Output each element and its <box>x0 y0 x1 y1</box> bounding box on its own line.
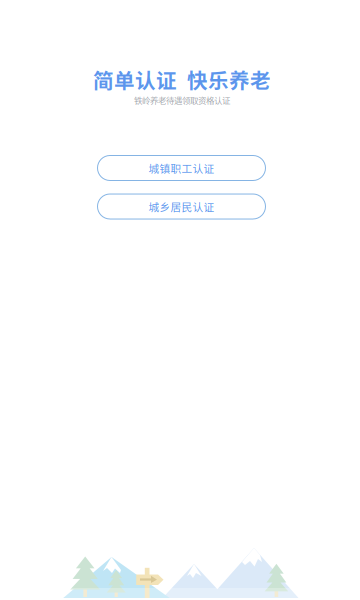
button[interactable]: 城镇职工认证 <box>97 155 265 180</box>
button[interactable]: 城乡居民认证 <box>97 194 265 219</box>
staticText: 城镇职工认证 <box>148 160 214 176</box>
staticText: 简单认证 快乐养老 <box>93 65 271 94</box>
staticText: 城乡居民认证 <box>148 199 214 214</box>
staticText: 铁岭养老待遇领取资格认证 <box>134 94 230 106</box>
